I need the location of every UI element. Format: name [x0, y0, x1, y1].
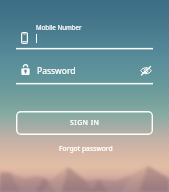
button[interactable]: Show password	[140, 65, 152, 76]
staticText: Forgot password	[59, 144, 113, 153]
button[interactable]: Forgot password	[59, 144, 113, 153]
button[interactable]: SIGN IN	[16, 111, 153, 135]
staticText: Mobile Number	[36, 23, 82, 31]
staticText: SIGN IN	[70, 118, 100, 128]
staticText: Password	[37, 65, 76, 77]
